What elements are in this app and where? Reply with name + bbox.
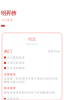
staticText: 市场分析报告 bbox=[7, 61, 25, 64]
staticText: 查看全部 bbox=[7, 97, 19, 100]
staticText: 继续浏览更多精彩内容与详细数据说明 bbox=[4, 91, 55, 94]
staticText: 热点追踪解读 bbox=[7, 66, 25, 70]
button[interactable]: 市场分析报告 bbox=[4, 61, 60, 64]
button[interactable]: 今日要闻速递 bbox=[4, 56, 60, 59]
staticText: 热门 bbox=[4, 49, 12, 54]
staticText: 更多内容 bbox=[48, 50, 60, 53]
staticText: 今日推荐 bbox=[1, 19, 13, 22]
staticText: 精选 bbox=[28, 37, 36, 42]
staticText: 今日要闻速递 bbox=[7, 56, 25, 59]
staticText: 明昇榜 bbox=[1, 10, 16, 17]
staticText: 这里是一段说明文字用于描述当前的内容概要与要点信息 bbox=[4, 77, 58, 84]
button[interactable]: 热点追踪解读 bbox=[4, 66, 60, 70]
staticText: 推荐列表 bbox=[26, 43, 38, 46]
button[interactable] bbox=[0, 22, 5, 27]
staticText: 相关推荐 bbox=[4, 87, 16, 90]
staticText: 专题报道 bbox=[4, 73, 16, 76]
